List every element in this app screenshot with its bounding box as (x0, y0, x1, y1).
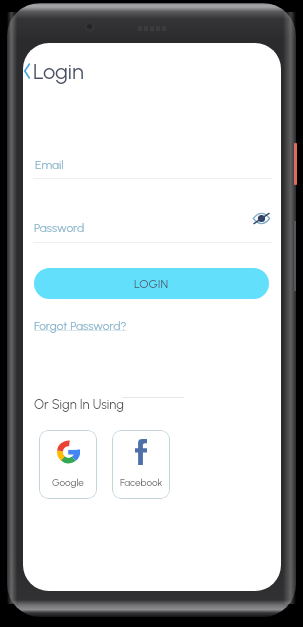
staticText: Email (35, 158, 64, 172)
staticText: Google (52, 476, 84, 488)
staticText: Login (33, 58, 84, 84)
button[interactable]: Forgot Password? (34, 319, 127, 333)
staticText: Or Sign In Using (34, 397, 124, 413)
staticText: Forgot Password? (34, 319, 127, 333)
button[interactable]: Facebook (112, 430, 170, 499)
button[interactable]: Login (23, 58, 84, 84)
staticText: Facebook (120, 476, 163, 488)
button[interactable]: Toggle password visibility (251, 208, 271, 228)
button[interactable]: LOGIN (34, 268, 269, 299)
button[interactable]: Google (39, 430, 97, 499)
staticText: LOGIN (134, 277, 169, 291)
staticText: Password (34, 221, 85, 235)
